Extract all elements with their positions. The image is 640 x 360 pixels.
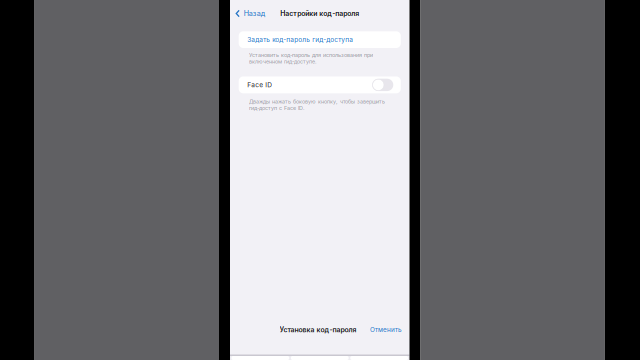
staticText: Дважды нажать боковую кнопку, чтобы заве…: [249, 98, 385, 111]
staticText: Задать код-пароль гид-доступа: [247, 36, 353, 44]
button[interactable]: Назад: [230, 5, 270, 22]
staticText: Настройки код-пароля: [280, 9, 359, 18]
staticText: Установка код-пароля: [279, 325, 356, 334]
button[interactable]: Face ID: [239, 76, 401, 93]
button[interactable]: Задать код-пароль гид-доступа: [239, 31, 401, 48]
button[interactable]: Отменить: [370, 322, 402, 337]
staticText: Отменить: [370, 326, 402, 333]
staticText: Назад: [244, 9, 266, 18]
staticText: Установить код-пароль для использования …: [249, 52, 373, 65]
staticText: Face ID: [247, 81, 272, 89]
